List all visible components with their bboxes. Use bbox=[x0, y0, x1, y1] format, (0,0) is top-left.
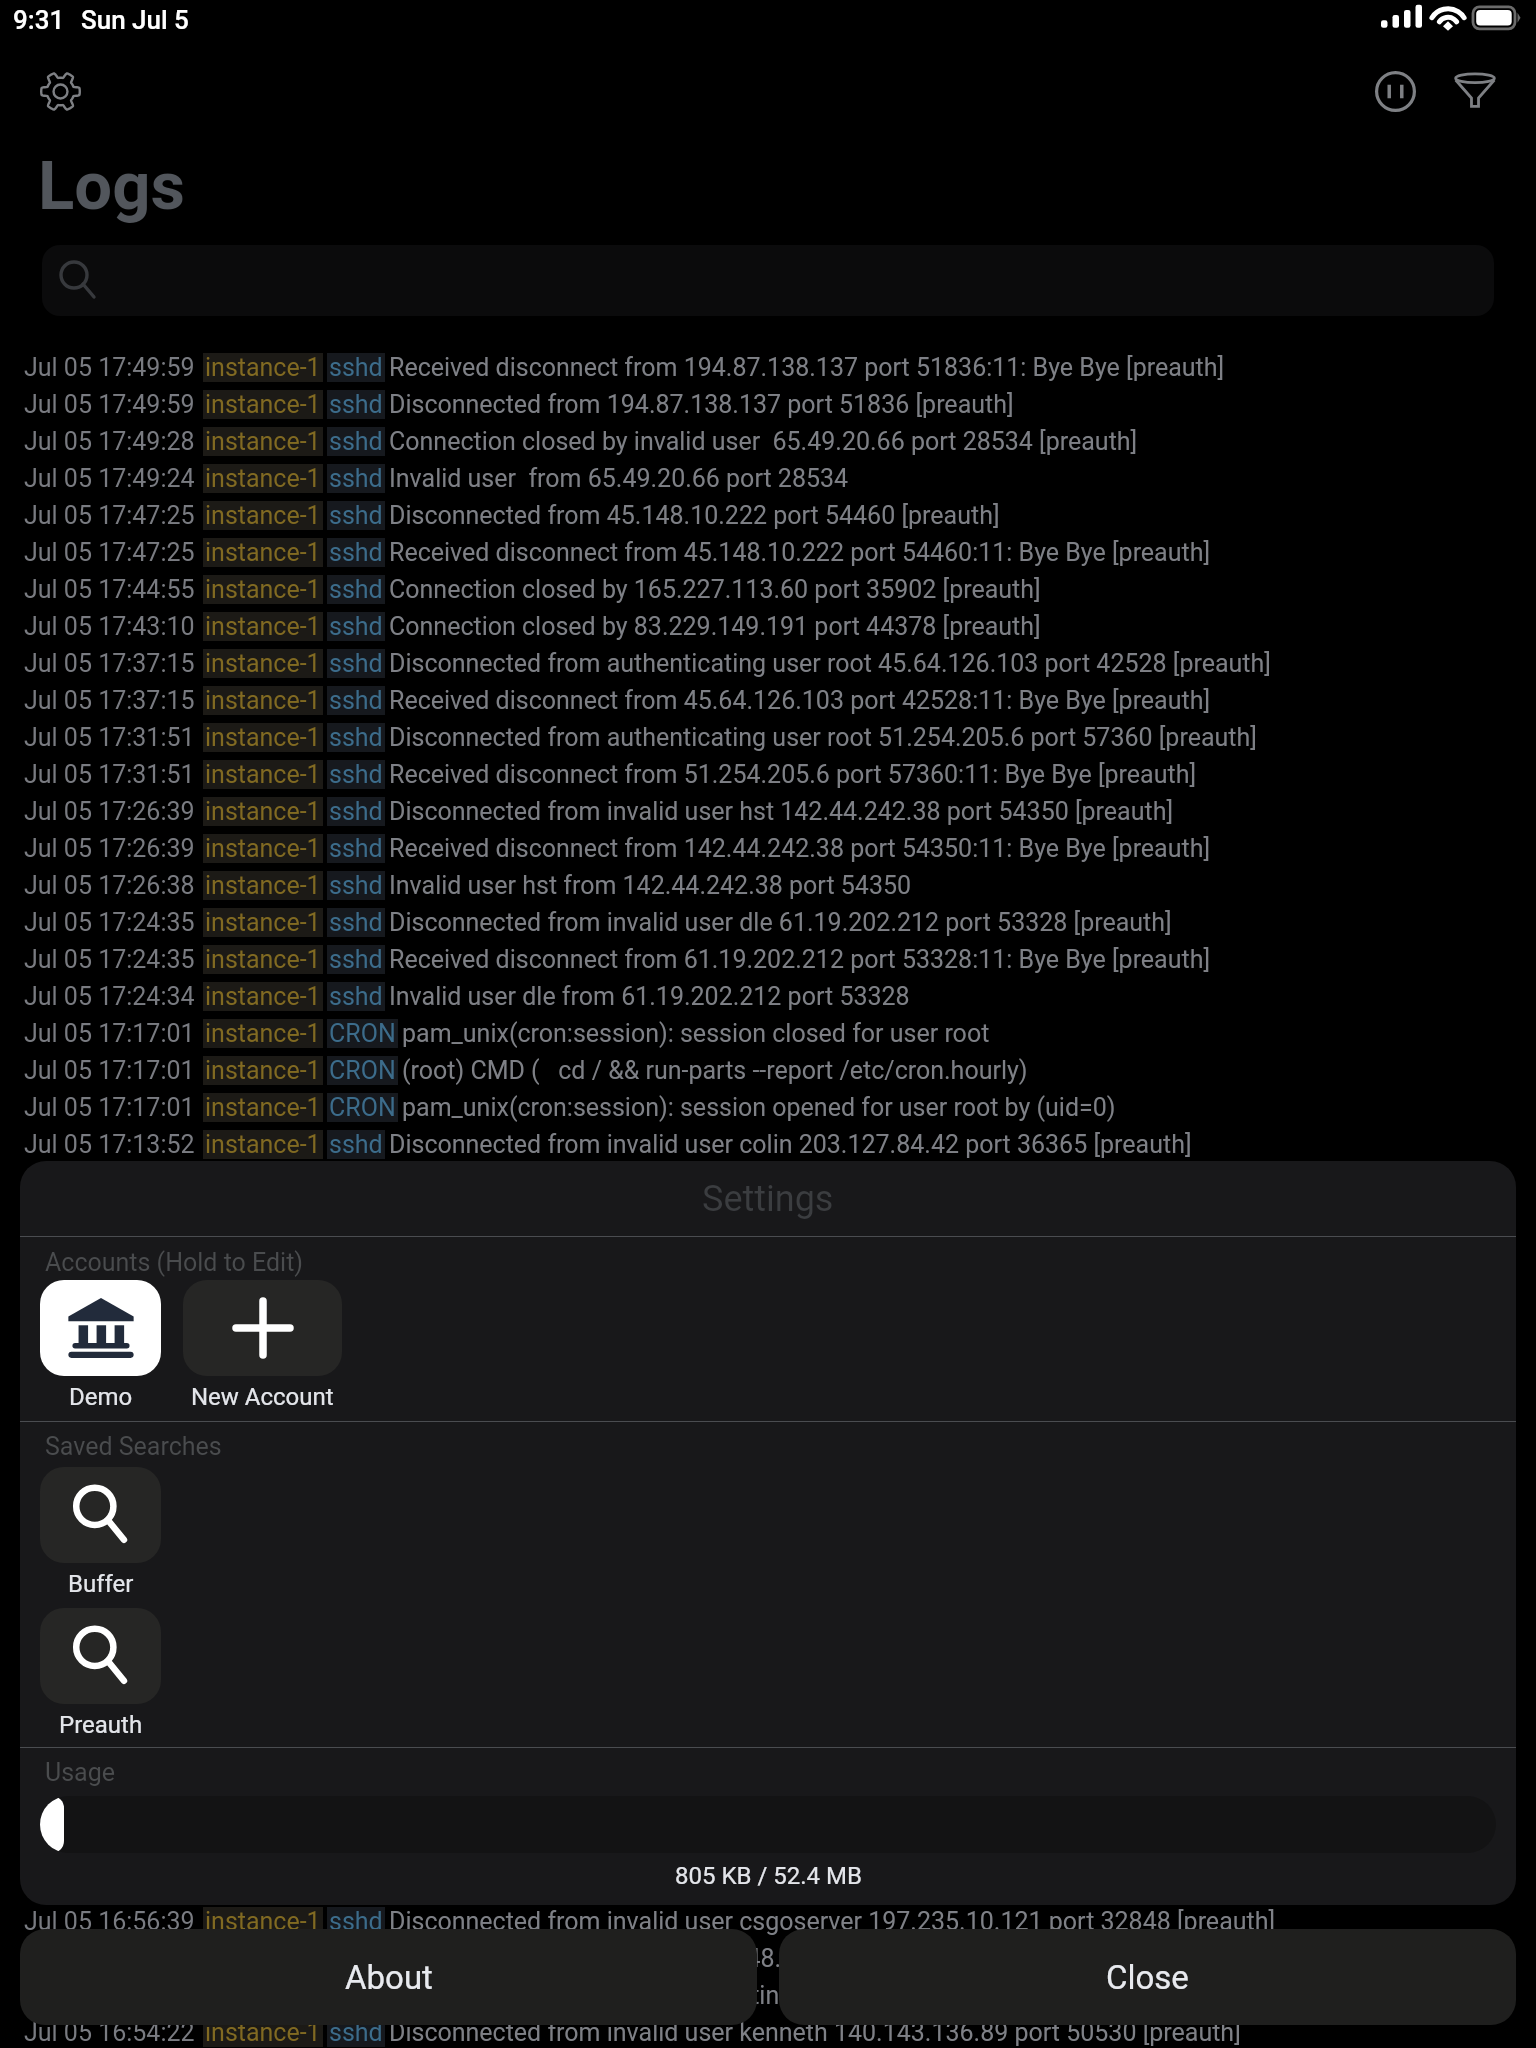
staticText: Disconnected from authenticating user ro… bbox=[389, 723, 1257, 752]
staticText: Received disconnect from 194.87.138.137 … bbox=[389, 353, 1225, 382]
staticText: instance-1 bbox=[205, 908, 321, 937]
button[interactable]: Jul 05 17:24:35 bbox=[0, 941, 1536, 978]
staticText: sshd bbox=[329, 723, 383, 752]
staticText: Received disconnect from 104.248.1435 po… bbox=[389, 1944, 1204, 1973]
staticText: Logs bbox=[38, 147, 185, 226]
button[interactable]: Jul 05 17:11:20 bbox=[0, 1237, 1536, 1274]
button[interactable]: New Account bbox=[183, 1280, 342, 1376]
staticText: Jul 05 16:59:28 bbox=[24, 1685, 195, 1714]
button[interactable]: Close bbox=[779, 1929, 1516, 2025]
button[interactable]: Buffer bbox=[40, 1467, 161, 1563]
button[interactable]: Jul 05 16:59:28 bbox=[0, 1718, 1536, 1755]
staticText: instance-1 bbox=[205, 797, 321, 826]
staticText: Disconnected from authenticating user ro… bbox=[389, 649, 1271, 678]
button[interactable]: Jul 05 16:54:22 bbox=[0, 2014, 1536, 2048]
button[interactable]: Jul 05 17:49:28 bbox=[0, 423, 1536, 460]
button[interactable]: Jul 05 17:47:25 bbox=[0, 497, 1536, 534]
button[interactable]: Jul 05 17:09:44 bbox=[0, 1311, 1536, 1348]
staticText: instance-1 bbox=[205, 1056, 321, 1085]
button[interactable]: Jul 05 17:26:38 bbox=[0, 867, 1536, 904]
staticText: instance-1 bbox=[205, 723, 321, 752]
button[interactable]: Jul 05 16:57:21 bbox=[0, 1829, 1536, 1866]
button[interactable]: Jul 05 17:05:02 bbox=[0, 1422, 1536, 1459]
button[interactable]: Jul 05 17:31:51 bbox=[0, 719, 1536, 756]
button[interactable]: Jul 05 17:26:39 bbox=[0, 793, 1536, 830]
button[interactable]: Jul 05 17:49:59 bbox=[0, 349, 1536, 386]
button[interactable]: Filter bbox=[1435, 51, 1515, 131]
button[interactable]: Jul 05 17:17:01 bbox=[0, 1015, 1536, 1052]
button[interactable]: Jul 05 17:49:24 bbox=[0, 460, 1536, 497]
button[interactable]: Jul 05 17:47:25 bbox=[0, 534, 1536, 571]
button[interactable]: Jul 05 17:01:15 bbox=[0, 1533, 1536, 1570]
staticText: sshd bbox=[329, 1389, 383, 1418]
button[interactable]: Jul 05 16:56:39 bbox=[0, 1866, 1536, 1903]
staticText: Received disconnect from 45.148.10.222 p… bbox=[389, 538, 1211, 567]
button[interactable]: Jul 05 16:59:28 bbox=[0, 1681, 1536, 1718]
staticText: Jul 05 17:26:38 bbox=[24, 871, 195, 900]
button[interactable]: Pause bbox=[1355, 51, 1435, 131]
button[interactable]: Jul 05 16:55:02 bbox=[0, 1977, 1536, 2014]
staticText: sshd bbox=[329, 797, 383, 826]
staticText: 9:31 bbox=[13, 5, 65, 35]
button[interactable]: Jul 05 17:43:10 bbox=[0, 608, 1536, 645]
button[interactable]: Jul 05 16:58:02 bbox=[0, 1792, 1536, 1829]
button[interactable]: Jul 05 17:31:51 bbox=[0, 756, 1536, 793]
button[interactable]: Jul 05 17:07:18 bbox=[0, 1385, 1536, 1422]
staticText: sshd bbox=[329, 1944, 383, 1973]
staticText: Received disconnect from 142.44.242.38 p… bbox=[389, 834, 1211, 863]
button[interactable]: Jul 05 17:44:55 bbox=[0, 571, 1536, 608]
button[interactable]: Jul 05 16:58:44 bbox=[0, 1755, 1536, 1792]
staticText: Jul 05 17:00:01 bbox=[24, 1648, 195, 1677]
staticText: sshd bbox=[329, 427, 383, 456]
staticText: Jul 05 17:11:20 bbox=[24, 1241, 195, 1270]
button[interactable]: Jul 05 17:26:39 bbox=[0, 830, 1536, 867]
button[interactable]: Jul 05 16:56:39 bbox=[0, 1903, 1536, 1940]
staticText: Jul 05 17:26:39 bbox=[24, 834, 195, 863]
staticText: sshd bbox=[329, 1315, 383, 1344]
button[interactable]: About bbox=[20, 1929, 757, 2025]
button[interactable]: Preauth bbox=[40, 1608, 161, 1704]
button[interactable]: Jul 05 17:13:52 bbox=[0, 1163, 1536, 1200]
staticText: Jul 05 17:49:59 bbox=[24, 390, 195, 419]
button[interactable]: Jul 05 17:17:01 bbox=[0, 1052, 1536, 1089]
button[interactable]: Jul 05 17:37:15 bbox=[0, 682, 1536, 719]
staticText: New Account bbox=[191, 1383, 334, 1411]
staticText: Invalid user from 65.49.20.66 port 28534 bbox=[389, 464, 849, 493]
staticText: Invalid user dle from 61.19.202.212 port… bbox=[389, 982, 910, 1011]
button[interactable]: Jul 05 17:00:01 bbox=[0, 1570, 1536, 1607]
button[interactable]: Jul 05 17:00:01 bbox=[0, 1644, 1536, 1681]
button[interactable]: Demo account bbox=[40, 1280, 161, 1376]
button[interactable]: Jul 05 17:24:35 bbox=[0, 904, 1536, 941]
button[interactable]: Settings bbox=[20, 51, 100, 131]
button[interactable]: Jul 05 17:37:15 bbox=[0, 645, 1536, 682]
button[interactable]: Jul 05 17:03:37 bbox=[0, 1459, 1536, 1496]
button[interactable]: Jul 05 16:55:48 bbox=[0, 1940, 1536, 1977]
button[interactable]: Jul 05 17:24:34 bbox=[0, 978, 1536, 1015]
button[interactable]: Jul 05 17:49:59 bbox=[0, 386, 1536, 423]
button[interactable]: Jul 05 17:07:18 bbox=[0, 1348, 1536, 1385]
button[interactable]: Jul 05 17:13:52 bbox=[0, 1126, 1536, 1163]
button[interactable]: Jul 05 17:17:01 bbox=[0, 1089, 1536, 1126]
button[interactable]: Jul 05 17:13:51 bbox=[0, 1200, 1536, 1237]
button[interactable]: Jul 05 17:09:44 bbox=[0, 1274, 1536, 1311]
staticText: Received disconnect from 51.254.205.6 po… bbox=[389, 760, 1197, 789]
staticText: sshd bbox=[329, 686, 383, 715]
button[interactable]: Jul 05 17:03:37 bbox=[0, 1496, 1536, 1533]
staticText: Jul 05 16:57:21 bbox=[24, 1833, 195, 1862]
staticText: Invalid user hst from 142.44.242.38 port… bbox=[389, 871, 912, 900]
staticText: Saved Searches bbox=[45, 1432, 222, 1461]
staticText: Jul 05 17:31:51 bbox=[24, 760, 195, 789]
button[interactable]: Jul 05 17:00:01 bbox=[0, 1607, 1536, 1644]
